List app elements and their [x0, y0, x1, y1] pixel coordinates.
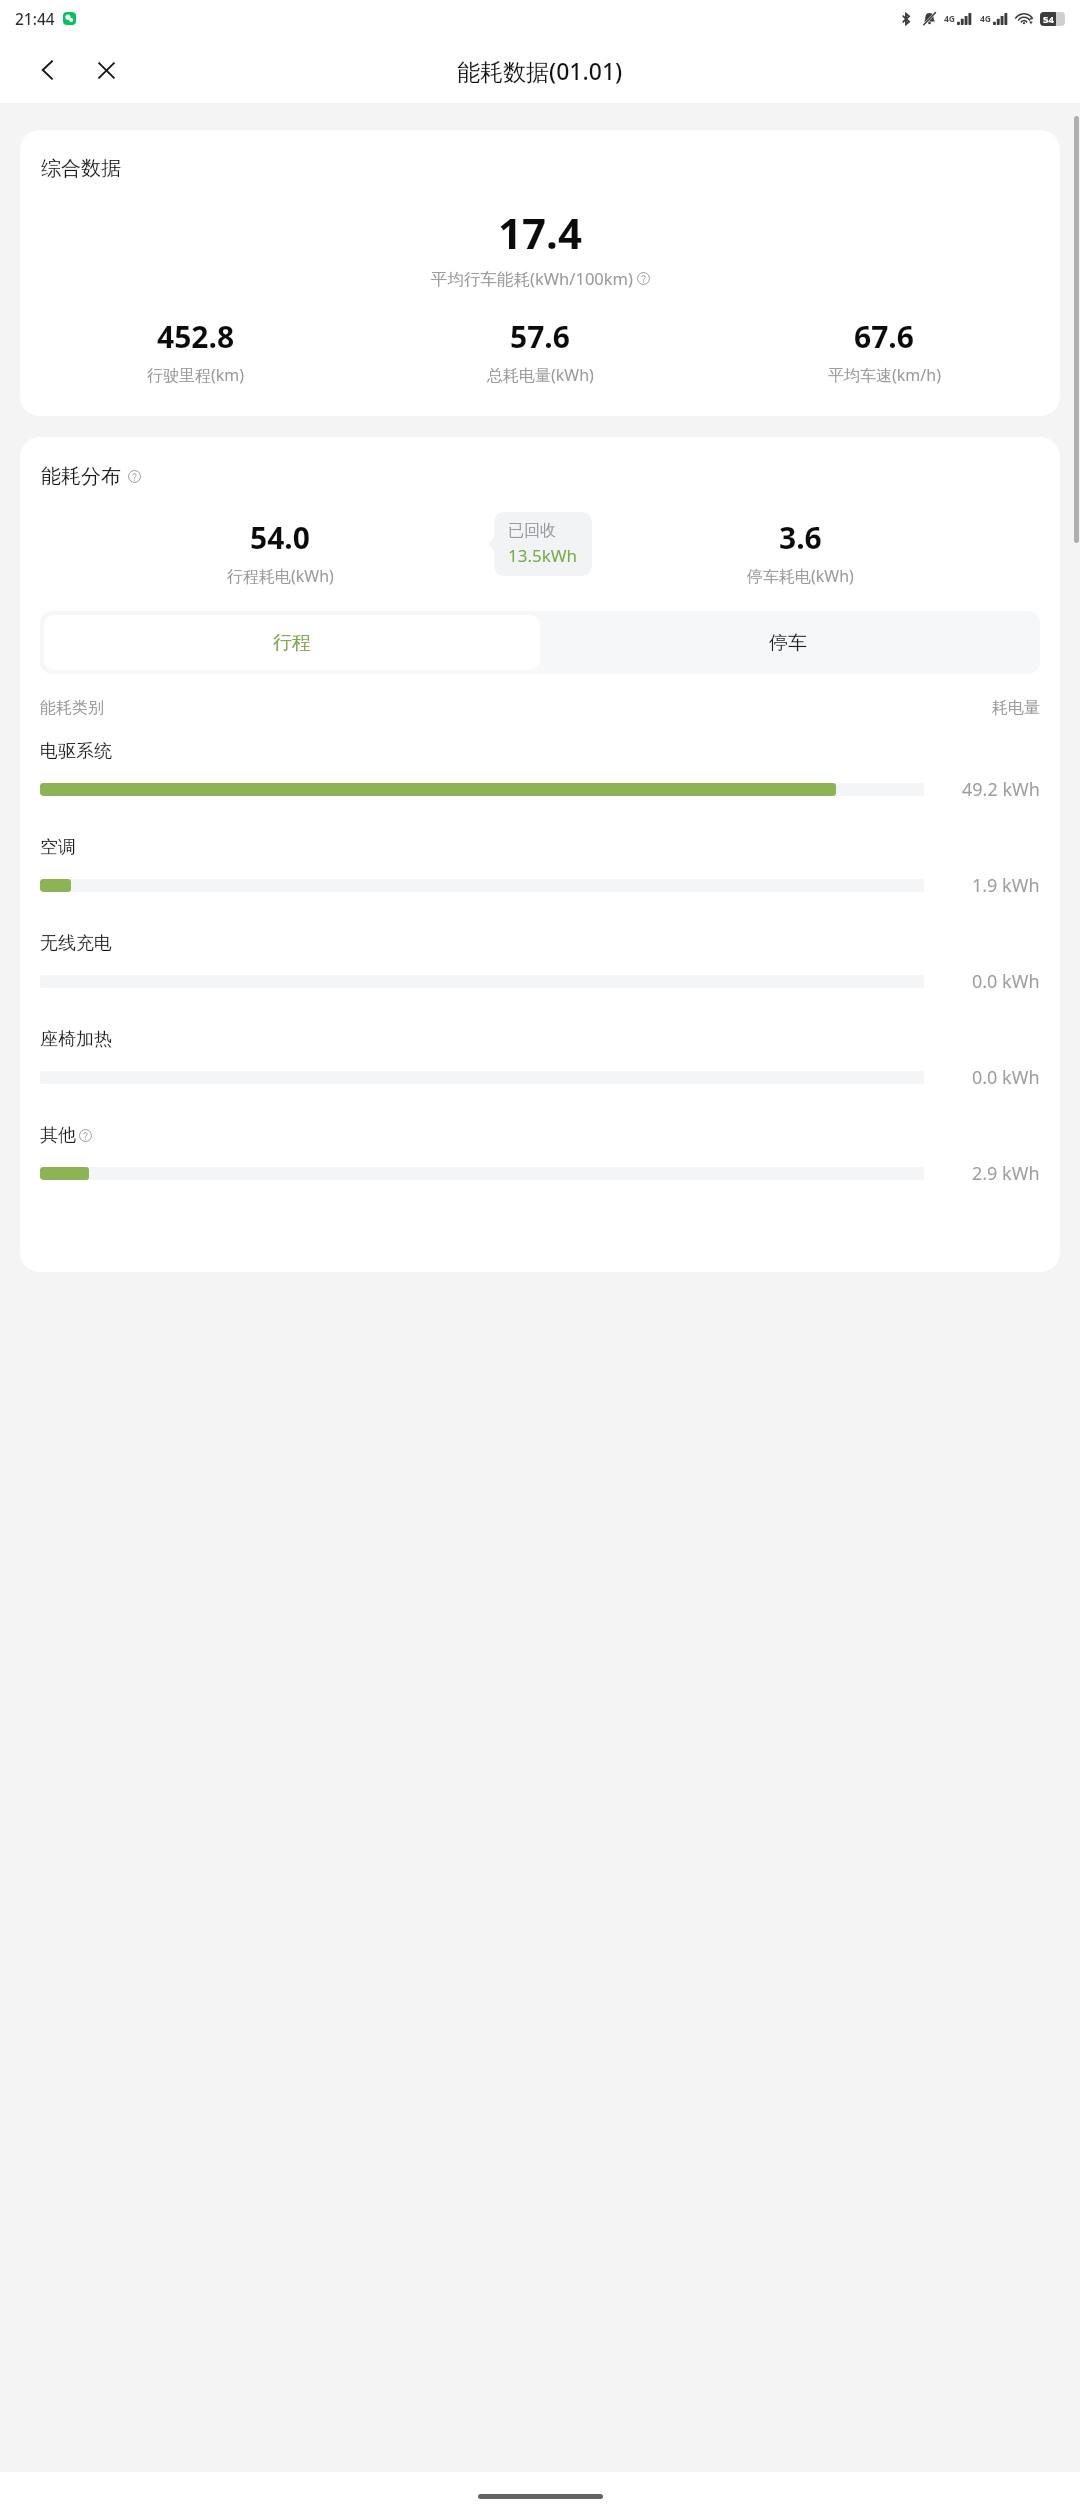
staticText: 17.4	[20, 204, 1060, 261]
staticText: 0.0 kWh	[972, 1065, 1040, 1090]
staticText: 能耗类别	[40, 698, 104, 718]
staticText: 行程耗电(kWh)	[227, 565, 334, 587]
staticText: 综合数据	[41, 156, 121, 181]
staticText: 无线充电	[40, 932, 112, 955]
button[interactable]: 行程	[44, 615, 540, 670]
staticText: 停车	[769, 631, 807, 655]
button[interactable]: 停车	[540, 615, 1036, 670]
button[interactable]: 无线充电	[20, 932, 1060, 1028]
button[interactable]: 综合数据	[20, 130, 1060, 416]
staticText: 0.0 kWh	[972, 969, 1040, 994]
staticText: 2.9 kWh	[972, 1161, 1040, 1186]
button[interactable]: 电驱系统	[20, 740, 1060, 836]
staticText: 54	[1043, 13, 1054, 26]
staticText: 行程	[273, 631, 311, 655]
button[interactable]: 能耗分布	[41, 464, 141, 489]
staticText: 停车耗电(kWh)	[747, 565, 854, 587]
staticText: 4G	[944, 13, 956, 25]
staticText: 总耗电量(kWh)	[487, 364, 594, 386]
staticText: 452.8	[157, 316, 235, 357]
button[interactable]: 空调	[20, 836, 1060, 932]
staticText: 平均车速(km/h)	[828, 364, 941, 386]
staticText: 行驶里程(km)	[147, 364, 245, 386]
staticText: 67.6	[854, 316, 914, 357]
staticText: 能耗数据(01.01)	[457, 55, 623, 86]
staticText: 21:44	[15, 8, 55, 29]
staticText: 耗电量	[992, 698, 1040, 718]
button[interactable]: Back	[24, 46, 72, 94]
button[interactable]: Close	[82, 46, 130, 94]
staticText: 座椅加热	[40, 1028, 112, 1051]
staticText: 3.6	[779, 517, 822, 558]
staticText: 空调	[40, 836, 76, 859]
staticText: 电驱系统	[40, 740, 112, 763]
staticText: 1.9 kWh	[972, 873, 1040, 898]
staticText: 49.2 kWh	[962, 777, 1040, 802]
staticText: 57.6	[510, 316, 570, 357]
button[interactable]: 座椅加热	[20, 1028, 1060, 1124]
staticText: 4G	[980, 13, 992, 25]
staticText: 平均行车能耗(kWh/100km)	[431, 267, 633, 290]
staticText: 13.5kWh	[508, 544, 578, 567]
button[interactable]: 其他	[20, 1124, 1060, 1220]
staticText: 54.0	[250, 517, 310, 558]
staticText: 能耗分布	[41, 464, 121, 489]
staticText: 其他	[40, 1124, 76, 1147]
staticText: 已回收	[508, 521, 556, 541]
